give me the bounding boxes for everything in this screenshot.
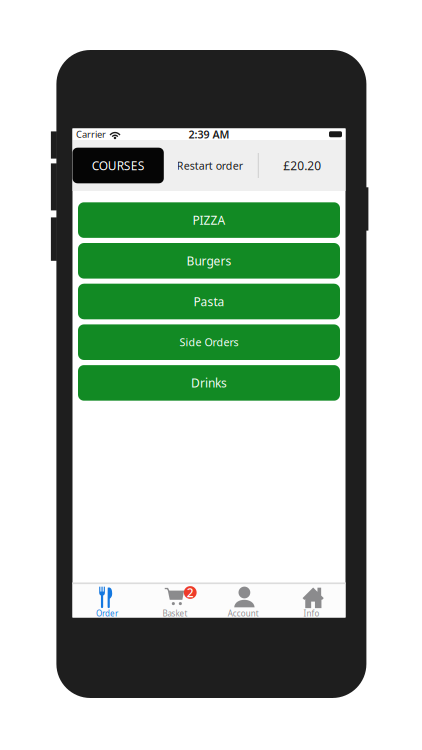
button[interactable]: Burgers xyxy=(78,243,340,279)
staticText: Burgers xyxy=(186,253,231,269)
staticText: Pasta xyxy=(193,293,224,309)
staticText: Info xyxy=(303,608,319,619)
staticText: PIZZA xyxy=(192,212,225,228)
button[interactable]: Info xyxy=(277,582,345,617)
button[interactable]: Side Orders xyxy=(78,324,340,360)
staticText: Account xyxy=(228,608,259,619)
staticText: Order xyxy=(96,608,118,619)
staticText: Drinks xyxy=(191,375,227,391)
button[interactable]: Account xyxy=(209,582,277,617)
staticText: Carrier xyxy=(76,128,106,140)
staticText: COURSES xyxy=(92,157,145,173)
staticText: 2 xyxy=(187,584,194,600)
button[interactable]: Pasta xyxy=(78,284,340,319)
button[interactable]: 2 xyxy=(141,582,209,617)
staticText: 2:39 AM xyxy=(188,127,229,141)
staticText: Side Orders xyxy=(179,335,238,349)
button[interactable]: COURSES xyxy=(72,148,164,183)
button[interactable]: Restart order xyxy=(162,140,258,191)
button[interactable]: Order xyxy=(72,582,141,617)
staticText: £20.20 xyxy=(283,157,321,173)
button[interactable]: £20.20 xyxy=(259,140,345,191)
staticText: Basket xyxy=(162,608,187,619)
staticText: Restart order xyxy=(177,158,243,173)
button[interactable]: Drinks xyxy=(78,365,340,401)
button[interactable]: PIZZA xyxy=(78,202,340,238)
